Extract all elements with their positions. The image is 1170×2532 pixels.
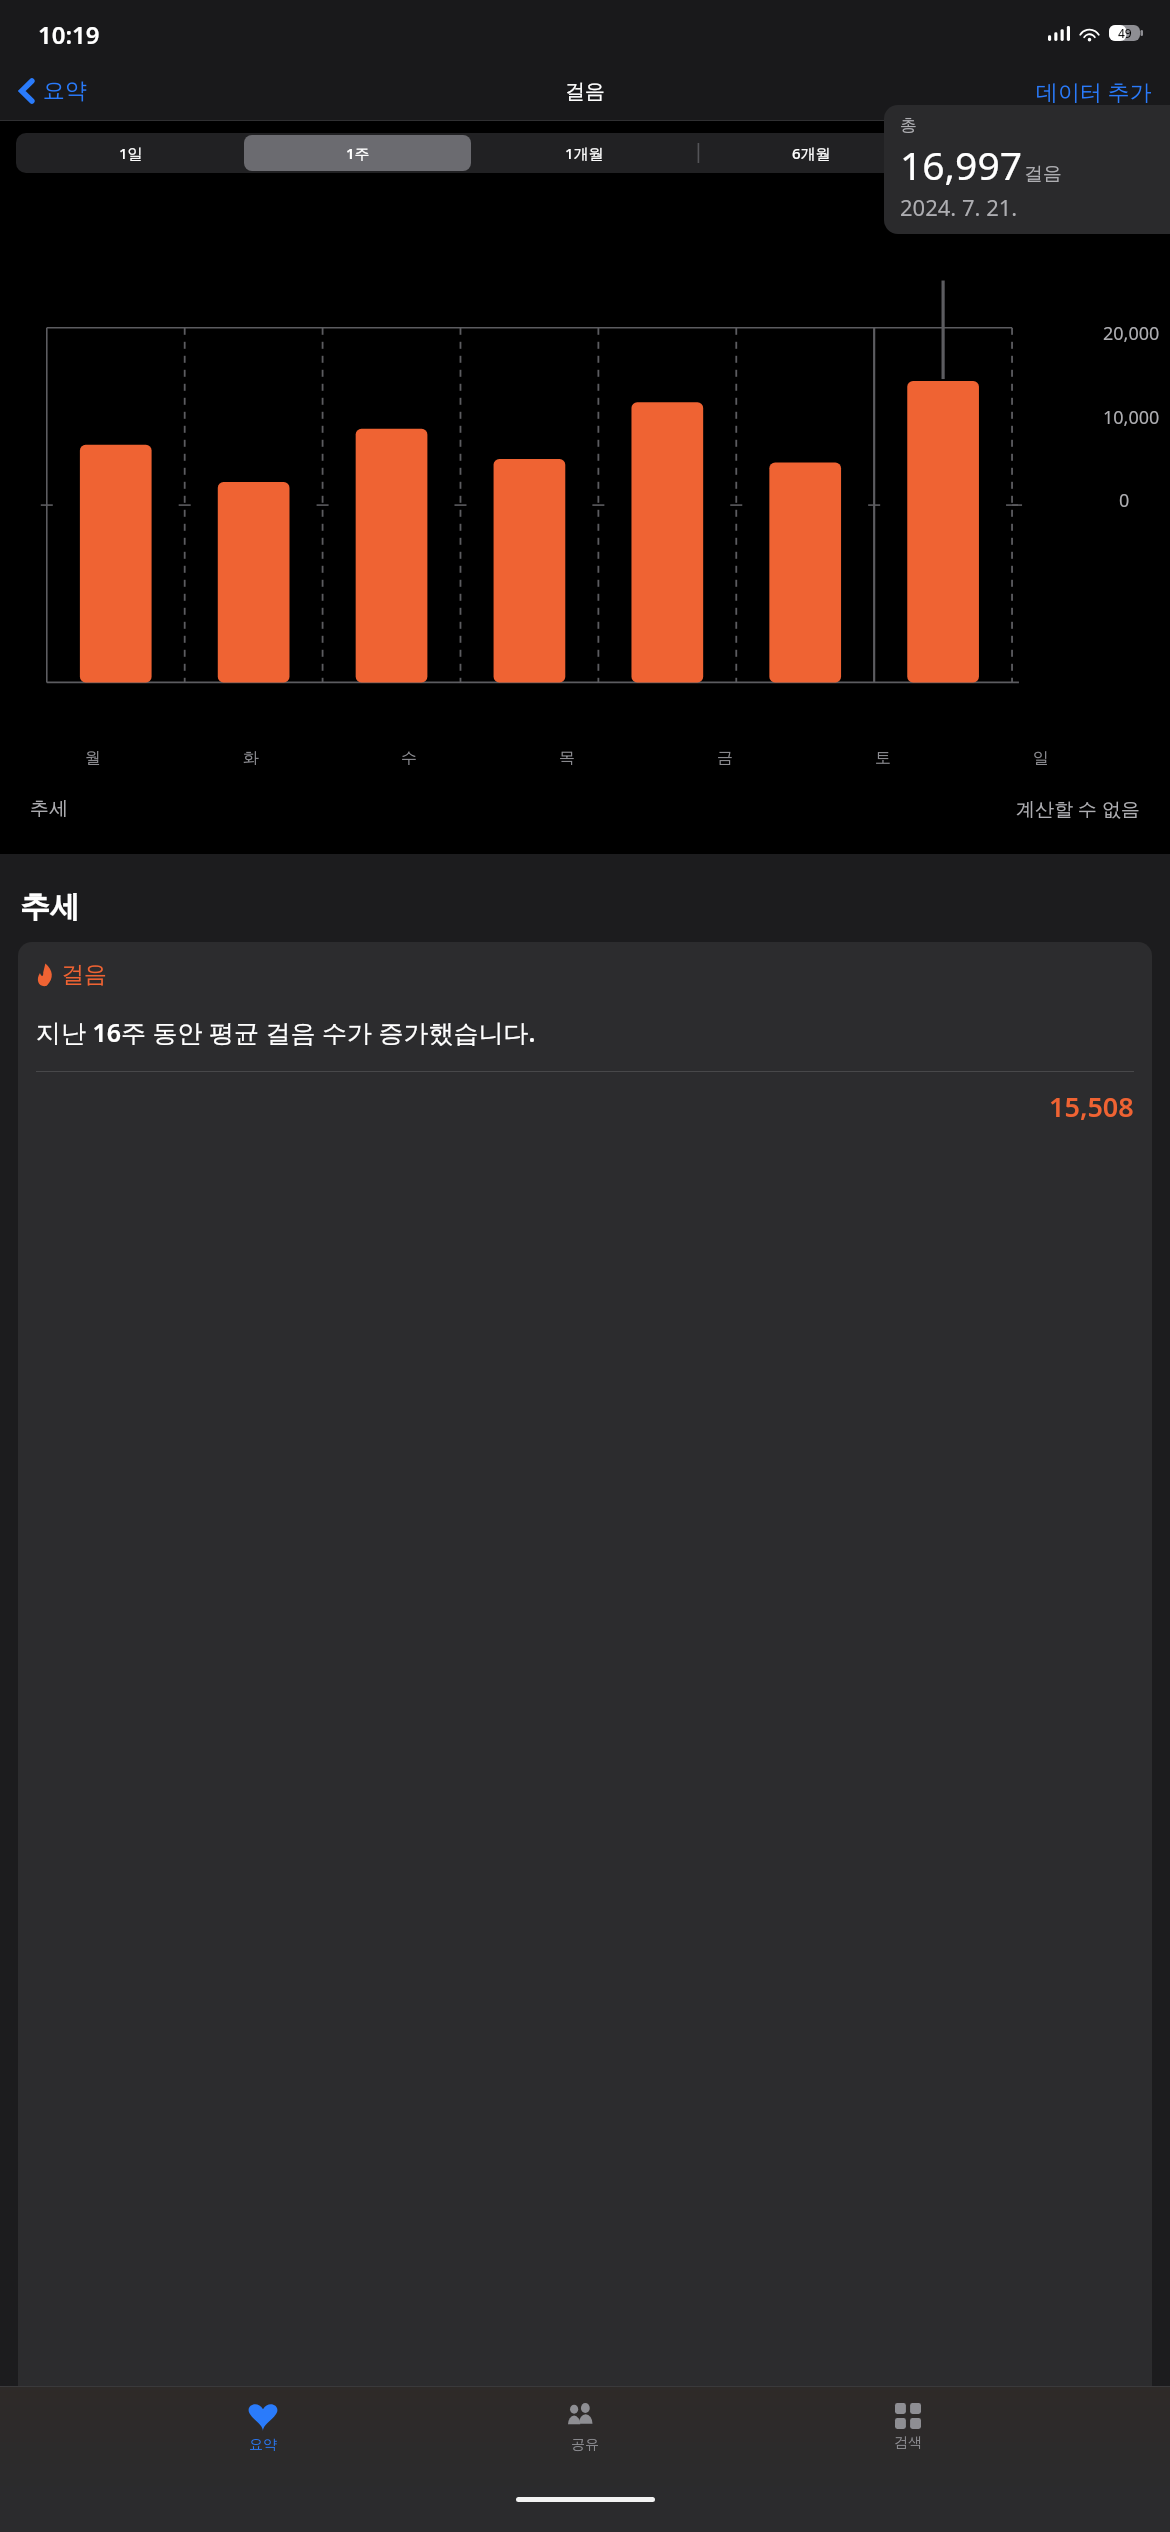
- staticText: 월: [85, 748, 101, 768]
- staticText: 요약: [43, 77, 87, 105]
- staticText: 걸음: [565, 79, 605, 104]
- button[interactable]: 공유: [525, 2399, 645, 2458]
- staticText: 20,000: [1103, 321, 1160, 346]
- staticText: 토: [875, 748, 891, 768]
- staticText: 1개월: [565, 143, 604, 163]
- staticText: 걸음: [1024, 162, 1062, 186]
- staticText: 공유: [571, 2436, 599, 2454]
- button[interactable]: 추세: [16, 780, 1154, 838]
- button[interactable]: 1일: [18, 135, 244, 171]
- staticText: 계산할 수 없음: [1016, 796, 1140, 822]
- staticText: 6개월: [792, 143, 831, 163]
- staticText: 걸음: [61, 960, 107, 989]
- staticText: 총: [900, 115, 917, 136]
- staticText: 0: [1119, 488, 1130, 513]
- staticText: 2024. 7. 21.: [900, 192, 1018, 222]
- button[interactable]: 요약: [203, 2399, 323, 2458]
- button[interactable]: 1개월: [471, 135, 698, 171]
- staticText: 추세: [30, 797, 68, 821]
- staticText: 목: [559, 748, 575, 768]
- staticText: 10:19: [38, 18, 100, 51]
- staticText: 수: [401, 748, 417, 768]
- button[interactable]: 6개월: [698, 135, 925, 171]
- button[interactable]: 1년: [925, 135, 1152, 171]
- other: 공유: [568, 2403, 602, 2431]
- staticText: 16,997: [900, 138, 1022, 191]
- staticText: 49: [1118, 25, 1132, 41]
- staticText: 데이터 추가: [1036, 76, 1152, 106]
- staticText: 일: [1033, 748, 1049, 768]
- staticText: 금: [717, 748, 733, 768]
- button[interactable]: 걸음: [18, 942, 1152, 2532]
- staticText: 10,000: [1103, 405, 1160, 430]
- other: 요약: [248, 2403, 278, 2431]
- staticText: 추세: [20, 888, 80, 926]
- button[interactable]: 데이터 추가: [1028, 70, 1160, 112]
- staticText: 요약: [249, 2436, 277, 2454]
- staticText: 지난 16주 동안 평균 걸음 수가 증가했습니다.: [36, 1015, 536, 1049]
- staticText: 검색: [894, 2434, 922, 2452]
- staticText: 1일: [119, 143, 143, 163]
- staticText: 1주: [346, 143, 370, 163]
- other: 검색: [895, 2403, 921, 2429]
- staticText: 15,508: [1049, 1088, 1134, 1125]
- button[interactable]: 요약: [12, 71, 95, 111]
- button[interactable]: 검색: [848, 2399, 968, 2456]
- button[interactable]: 1주: [244, 135, 471, 171]
- staticText: 화: [243, 748, 259, 768]
